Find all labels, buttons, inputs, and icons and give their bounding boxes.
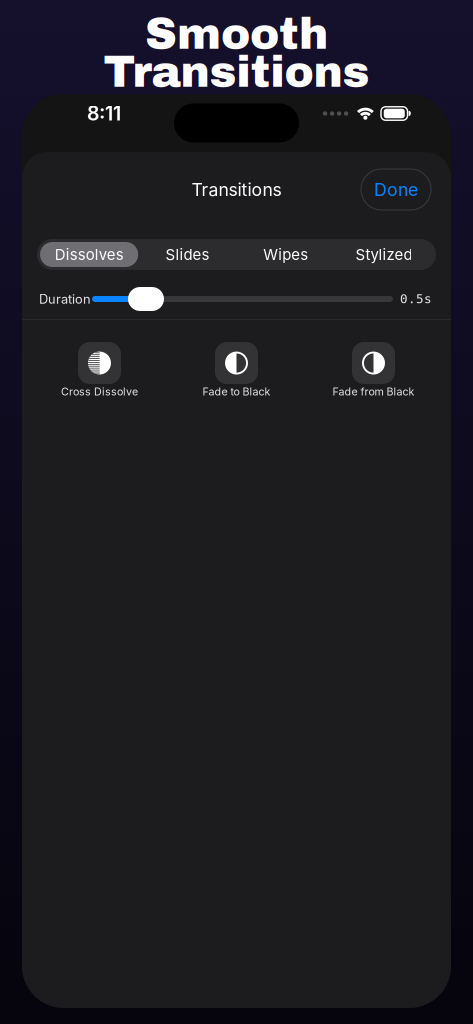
staticText: Slides [165, 245, 209, 264]
staticText: Fade from Black [332, 385, 414, 398]
staticText: 0.5s [400, 292, 432, 306]
staticText: Duration [39, 291, 91, 307]
button[interactable]: Fade to Black [168, 334, 305, 406]
staticText: Cross Dissolve [61, 385, 138, 398]
button[interactable]: Fade from Black [305, 334, 442, 406]
staticText: Smooth [145, 10, 328, 58]
staticText: Done [374, 179, 418, 200]
staticText: 8:11 [87, 102, 121, 125]
staticText: Stylized [355, 245, 412, 264]
button[interactable]: Done [361, 169, 431, 210]
staticText: Fade to Black [202, 385, 270, 398]
staticText: Dissolves [55, 245, 124, 264]
staticText: Wipes [263, 245, 308, 264]
button[interactable]: Cross Dissolve [31, 334, 168, 406]
button[interactable]: Wipes [236, 242, 335, 267]
button[interactable]: Stylized [335, 242, 433, 267]
button[interactable]: Slides [138, 242, 236, 267]
staticText: Transitions [103, 48, 369, 96]
staticText: Transitions [191, 179, 281, 200]
button[interactable]: Dissolves [40, 242, 138, 267]
